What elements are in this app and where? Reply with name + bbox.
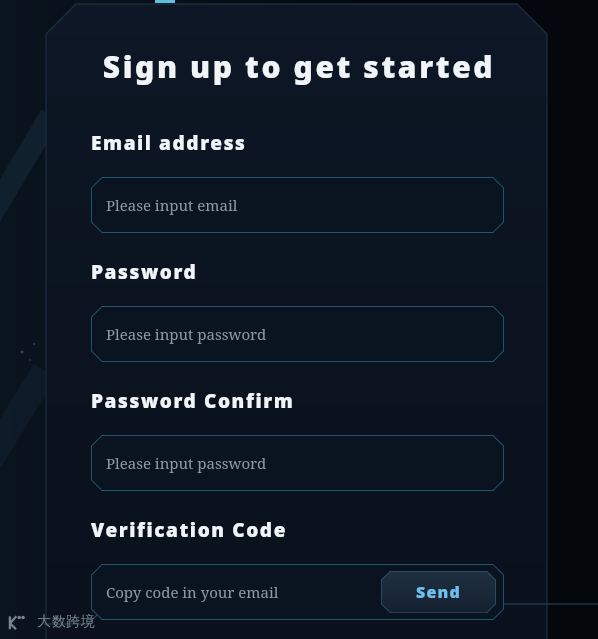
- button[interactable]: Send: [381, 571, 496, 613]
- staticText: 大数跨境: [37, 613, 95, 631]
- staticText: Please input password: [106, 324, 267, 344]
- staticText: Password Confirm: [91, 388, 295, 414]
- staticText: Copy code in your email: [106, 582, 279, 602]
- staticText: Sign up to get started: [0, 46, 598, 87]
- button[interactable]: Please input password: [91, 306, 504, 362]
- staticText: Please input password: [106, 453, 267, 473]
- staticText: Password: [91, 259, 198, 285]
- staticText: Send: [416, 581, 461, 603]
- staticText: Verification Code: [91, 517, 288, 543]
- button[interactable]: Please input email: [91, 177, 504, 233]
- staticText: Please input email: [106, 195, 238, 215]
- staticText: Email address: [91, 130, 247, 156]
- button[interactable]: Copy code in your email: [91, 564, 504, 620]
- button[interactable]: Please input password: [91, 435, 504, 491]
